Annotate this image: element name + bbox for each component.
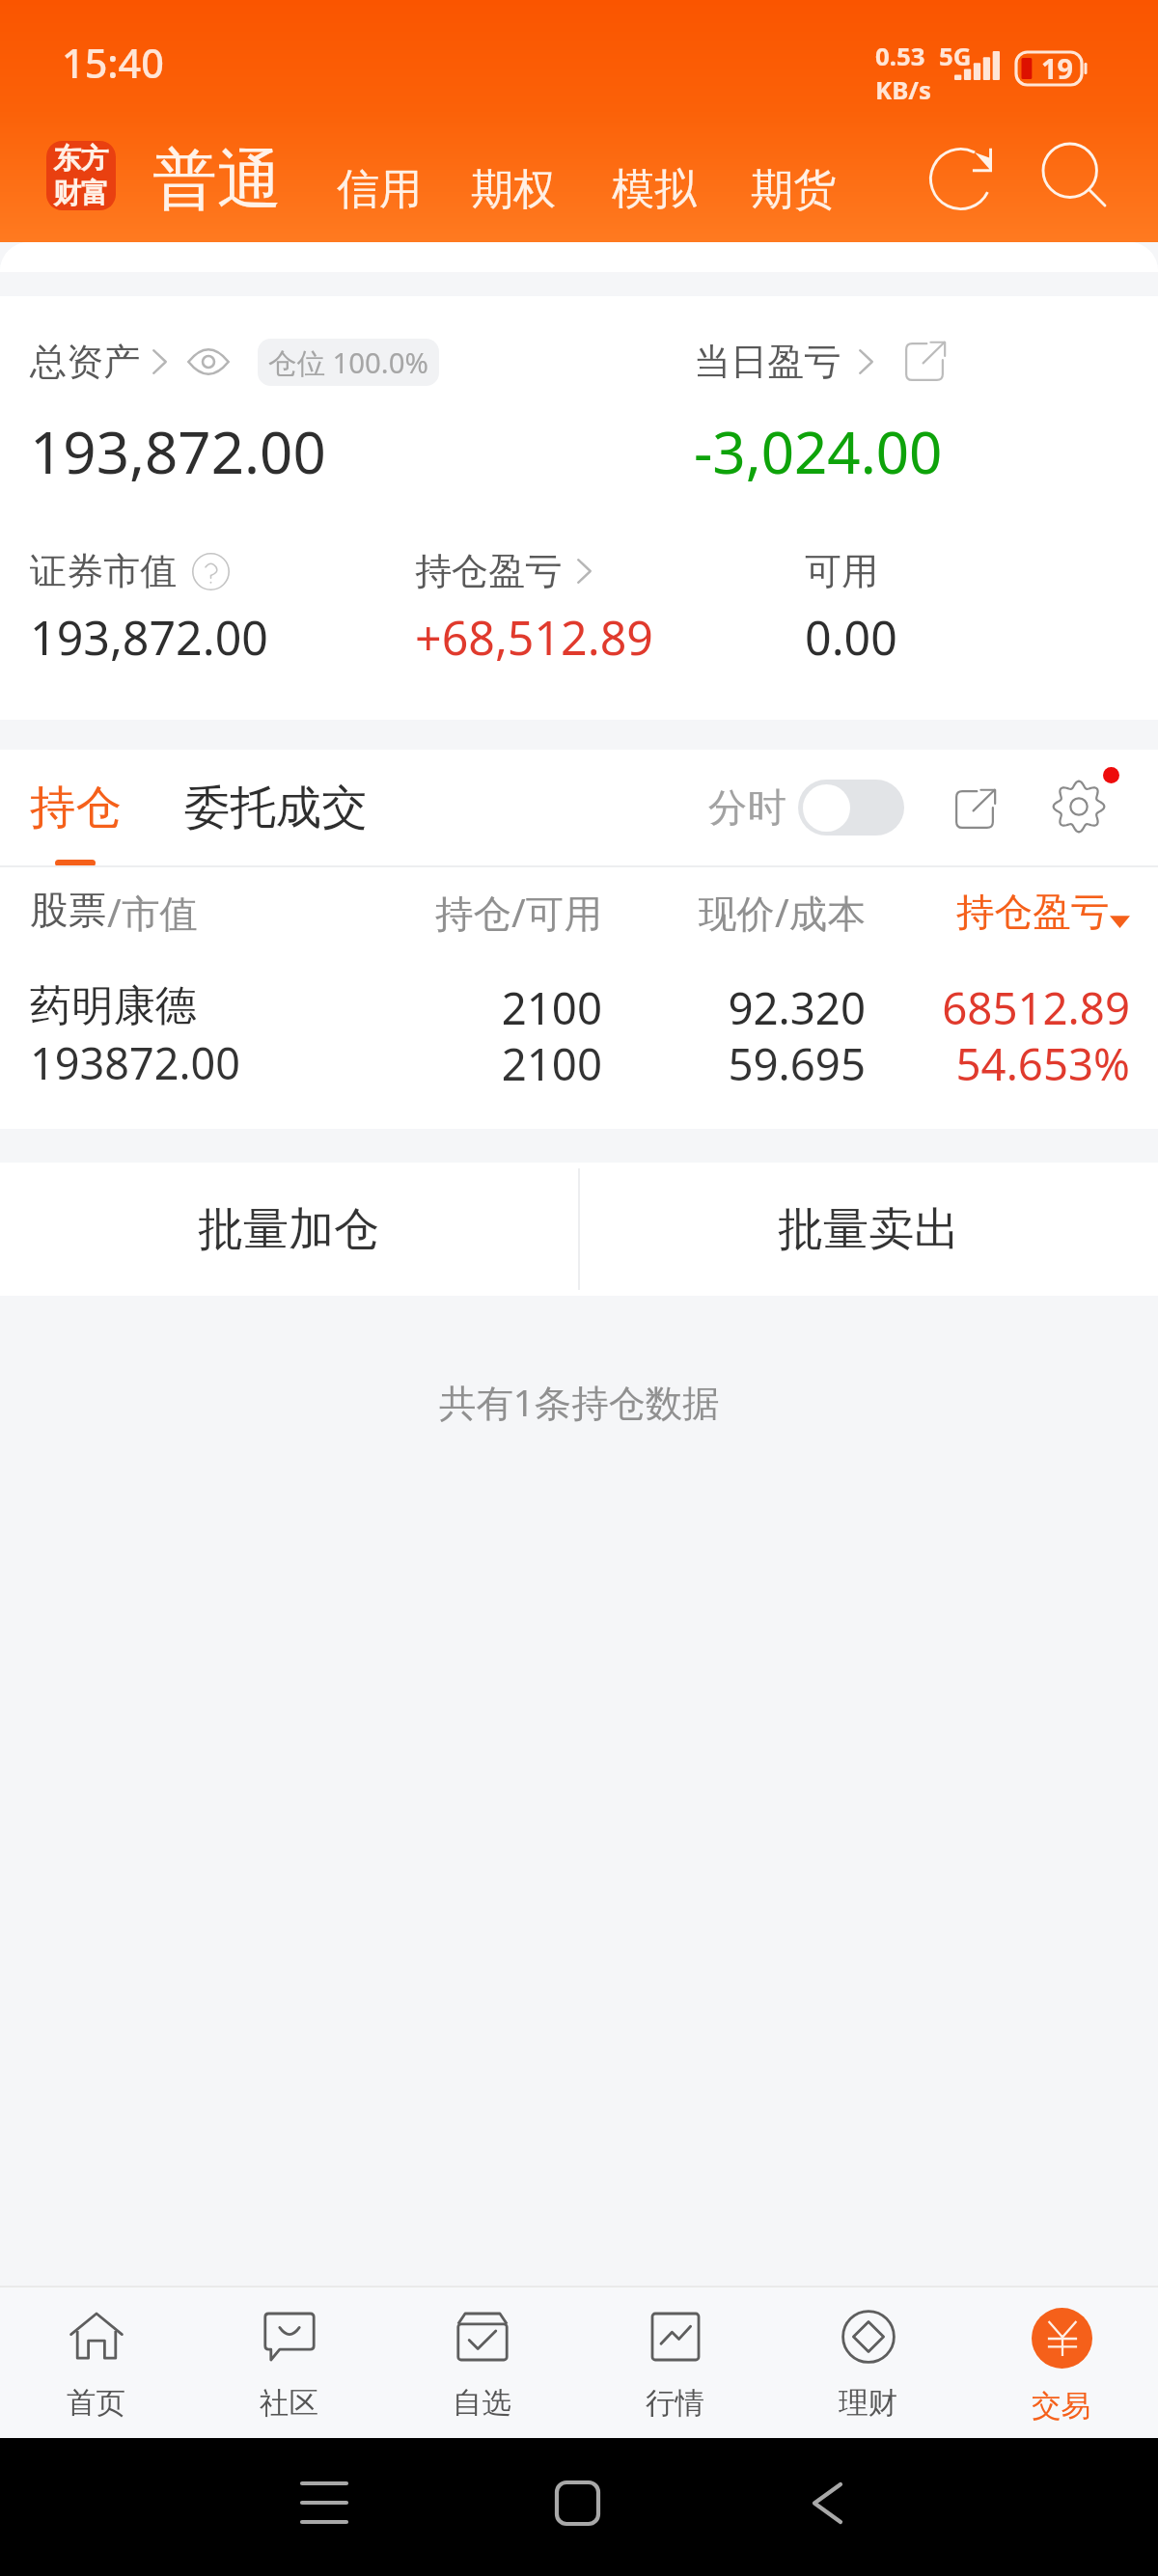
button[interactable]: 交易 [965,2288,1158,2438]
staticText: +68,512.89 [415,605,653,669]
button[interactable]: 当日盈亏 [694,339,947,385]
staticText: 自选 [453,2385,512,2423]
staticText: 药明康德 [30,979,197,1031]
staticText: 当日盈亏 [694,339,841,385]
staticText: 持仓 [30,779,122,836]
button[interactable]: 批量卖出 [580,1163,1158,1296]
staticText: 持仓/可用 [0,887,602,939]
staticText: 模拟 [612,163,698,217]
staticText: 可用 [805,548,879,594]
staticText: 持仓盈亏 [956,889,1110,937]
button[interactable]: 行情 [579,2288,772,2438]
staticText: KB/s [875,72,931,106]
button[interactable]: 委托成交 [184,776,368,839]
button[interactable]: Refresh [917,135,1004,222]
button[interactable]: 持仓 [30,776,122,839]
staticText: 分时 [708,783,786,833]
button[interactable]: 分时 [708,779,904,836]
staticText: 信用 [337,163,423,217]
staticText: 19 [1041,49,1073,87]
staticText: 行情 [646,2385,705,2423]
staticText: 2100 [0,1033,602,1089]
staticText: 交易 [1032,2388,1091,2425]
button[interactable]: Home [525,2451,629,2555]
button[interactable]: Settings [1036,764,1120,848]
staticText: /市值 [107,887,198,939]
staticText: 59.695 [0,1033,866,1089]
staticText: 193,872.00 [30,605,268,669]
button[interactable]: 自选 [386,2288,579,2438]
staticText: 社区 [260,2385,319,2423]
staticText: 193,872.00 [30,412,326,491]
button[interactable]: 总资产 [30,339,230,385]
staticText: 0.00 [805,605,897,669]
button[interactable]: 社区 [193,2288,386,2438]
staticText: -3,024.00 [694,412,943,491]
staticText: 2100 [0,977,602,1033]
staticText: 15:40 [62,36,164,90]
button[interactable]: East Money [46,141,116,210]
staticText: 股票 [30,887,107,935]
staticText: 委托成交 [184,779,368,836]
button[interactable]: Back [775,2451,879,2555]
button[interactable]: 理财 [772,2288,965,2438]
staticText: 54.653% [0,1033,1130,1089]
staticText: 期货 [751,163,837,217]
button[interactable]: 期权 [471,163,557,217]
staticText: 193872.00 [30,1033,240,1089]
staticText: 财富 [53,176,109,210]
staticText: 仓位 100.0% [268,343,428,382]
button[interactable]: 持仓盈亏 [415,548,592,594]
staticText: 理财 [839,2385,898,2423]
button[interactable]: 批量加仓 [0,1163,578,1296]
staticText: 期权 [471,163,557,217]
staticText: 普通 [152,140,282,221]
staticText: 92.320 [0,977,866,1033]
button[interactable]: 首页 [0,2288,193,2438]
staticText: 68512.89 [0,977,1130,1033]
button[interactable]: 药明康德 [0,957,1158,1089]
staticText: 5G [939,39,972,72]
staticText: 现价/成本 [0,887,866,939]
staticText: 首页 [67,2385,126,2423]
staticText: 批量卖出 [778,1201,960,1258]
staticText: 0.53 [875,39,925,72]
staticText: 批量加仓 [198,1201,380,1258]
button[interactable]: Open in new [932,767,1016,851]
staticText: 证券市值 [30,548,178,594]
staticText: 共有1条持仓数据 [439,1377,720,1427]
button[interactable]: 信用 [337,163,423,217]
staticText: 总资产 [30,339,141,385]
button[interactable]: Recent apps [272,2451,376,2555]
button[interactable]: 期货 [751,163,837,217]
button[interactable]: 模拟 [612,163,698,217]
button[interactable]: Search [1032,132,1118,219]
button[interactable]: 普通 [152,140,282,221]
staticText: 持仓盈亏 [415,548,563,594]
staticText: 东方 [53,141,109,176]
